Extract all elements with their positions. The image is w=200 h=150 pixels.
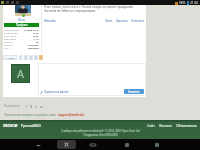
button[interactable]: 2 [24, 55, 28, 60]
staticText: Сообщество работает на Android™ © 2015-2… [61, 129, 140, 137]
button[interactable]: Share [24, 104, 29, 109]
staticText: 5 [40, 56, 42, 60]
staticText: девушка [28, 46, 39, 49]
button[interactable]: 5 [39, 55, 43, 60]
staticText: Репутация [4, 34, 17, 37]
staticText: Регистрация [4, 28, 19, 31]
staticText: B [30, 104, 33, 109]
button[interactable]: 4 [34, 55, 38, 60]
staticText: 4715 [33, 31, 39, 34]
staticText: ЛЕСНОЙ [3, 123, 18, 128]
staticText: m [40, 104, 44, 109]
button[interactable]: Back [33, 140, 43, 150]
staticText: Объявления [176, 123, 197, 128]
staticText: 7 / 0 [34, 37, 39, 40]
staticText: Профиль [16, 23, 28, 27]
staticText: 2 [25, 56, 27, 60]
button[interactable]: Фото [105, 19, 113, 23]
staticText: Ответить [128, 90, 140, 94]
staticText: Пол [4, 46, 9, 49]
button[interactable]: Screenshot [122, 140, 132, 150]
staticText: 4 [35, 56, 37, 60]
staticText: Технические вопросы по работе сайта [4, 113, 57, 117]
button[interactable]: Share [29, 104, 34, 109]
staticText: 36 [36, 40, 39, 43]
button[interactable]: More options [152, 140, 162, 150]
staticText: « Назад [6, 56, 15, 59]
button[interactable]: Жалоба [44, 19, 56, 23]
staticText: Я же писал, конечно я с Полей новую исто… [44, 5, 146, 13]
button[interactable]: 3 [29, 55, 33, 60]
staticText: 10 мая 2015 [24, 28, 39, 31]
staticText: 98% [179, 1, 186, 5]
staticText: 1236 [33, 34, 39, 37]
staticText: 3 [30, 56, 32, 60]
staticText: 21:33 [190, 1, 199, 5]
button[interactable]: Удалить [116, 19, 128, 23]
staticText: Прикрепить файлы [44, 90, 69, 94]
button[interactable]: Профиль [4, 23, 39, 27]
button[interactable]: support@mail.club [58, 113, 85, 117]
staticText: Сайт [147, 123, 155, 128]
button[interactable]: Share [34, 104, 39, 109]
staticText: Возраст [4, 40, 14, 43]
staticText: Украина [28, 43, 39, 46]
button[interactable]: 1 [19, 55, 23, 60]
button[interactable]: Recents [88, 140, 98, 150]
button[interactable]: Юля [3, 18, 40, 22]
staticText: Поделиться [4, 104, 21, 108]
button[interactable]: Ответить [124, 89, 144, 94]
button[interactable]: Ответить [131, 19, 145, 23]
staticText: Репутация [4, 37, 17, 40]
button[interactable]: Home [57, 140, 76, 149]
staticText: Русский(RU) [21, 123, 41, 128]
staticText: o [35, 104, 38, 109]
staticText: Личные [159, 123, 172, 128]
staticText: f [26, 104, 28, 109]
staticText: A [17, 66, 25, 81]
staticText: Сообщений [4, 31, 18, 34]
button[interactable]: Share [39, 104, 44, 109]
button[interactable]: « Назад [3, 55, 17, 60]
staticText: Страна [4, 43, 13, 46]
staticText: 1 [20, 56, 22, 60]
